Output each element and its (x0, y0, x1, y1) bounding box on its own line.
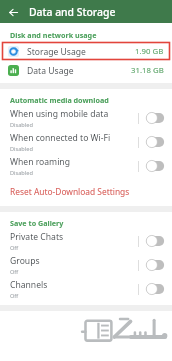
button[interactable]: When connected to Wi-Fi (0, 130, 172, 154)
staticText: When connected to Wi-Fi (10, 132, 111, 144)
staticText: Private Chats (10, 231, 64, 243)
staticText: Storage Usage (27, 46, 86, 58)
staticText: Groups (10, 255, 40, 267)
button[interactable]: Toggle setting (145, 135, 167, 149)
staticText: Off (10, 292, 19, 300)
staticText: Disk and network usage (10, 30, 97, 40)
button[interactable]: Storage Usage (0, 42, 172, 61)
button[interactable]: Toggle setting (145, 159, 167, 173)
button[interactable]: Groups (0, 253, 172, 277)
staticText: When roaming (10, 156, 70, 168)
button[interactable]: When roaming (0, 154, 172, 178)
button[interactable]: Toggle setting (145, 282, 167, 296)
staticText: Channels (10, 279, 48, 291)
button[interactable]: Back (5, 4, 21, 20)
staticText: Data and Storage (29, 5, 116, 19)
staticText: Off (10, 268, 19, 276)
staticText: Data Usage (27, 65, 74, 77)
staticText: Off (10, 244, 19, 252)
button[interactable]: Channels (0, 277, 172, 301)
button[interactable]: When using mobile data (0, 106, 172, 130)
staticText: Save to Gallery (10, 218, 64, 228)
button[interactable]: Toggle setting (145, 234, 167, 248)
button[interactable]: Toggle setting (145, 111, 167, 125)
button[interactable]: Data Usage (0, 61, 172, 80)
staticText: When using mobile data (10, 108, 109, 120)
staticText: Disabled (10, 121, 33, 129)
button[interactable]: Reset Auto-Download Settings (0, 180, 172, 206)
staticText: Disabled (10, 169, 33, 177)
staticText: Disabled (10, 145, 33, 153)
button[interactable]: Private Chats (0, 229, 172, 253)
staticText: 1.90 GB (135, 46, 164, 57)
button[interactable]: Toggle setting (145, 258, 167, 272)
staticText: 31.18 GB (131, 65, 164, 76)
staticText: Reset Auto-Download Settings (10, 186, 130, 197)
staticText: Automatic media download (10, 95, 109, 105)
